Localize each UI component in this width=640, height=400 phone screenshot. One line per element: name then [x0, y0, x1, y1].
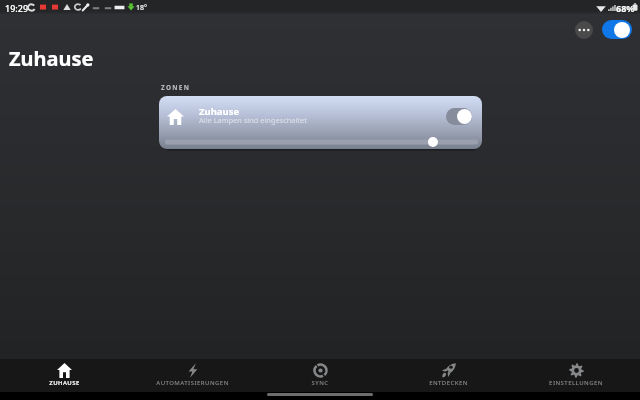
- button[interactable]: Zuhause: [159, 96, 482, 149]
- staticText: 18°: [136, 3, 147, 13]
- button[interactable]: ZUHAUSE: [0, 359, 128, 392]
- staticText: Alle Lampen sind eingeschaltet: [199, 115, 307, 125]
- staticText: AUTOMATISIERUNGEN: [156, 379, 229, 387]
- staticText: 68%: [616, 2, 635, 14]
- staticText: 19:29: [5, 2, 29, 14]
- staticText: SYNC: [311, 379, 329, 387]
- button[interactable]: ENTDECKEN: [384, 359, 512, 392]
- button[interactable]: Toggle home: [602, 20, 632, 39]
- button[interactable]: AUTOMATISIERUNGEN: [128, 359, 256, 392]
- button[interactable]: More options: [575, 21, 593, 39]
- staticText: ENTDECKEN: [429, 379, 468, 387]
- staticText: Zuhause: [199, 105, 240, 118]
- staticText: ZONEN: [161, 83, 191, 92]
- staticText: EINSTELLUNGEN: [549, 379, 603, 387]
- staticText: ZUHAUSE: [49, 379, 80, 387]
- staticText: Zuhause: [9, 45, 94, 66]
- button[interactable]: SYNC: [256, 359, 384, 392]
- button[interactable]: Zone toggle: [446, 108, 472, 125]
- button[interactable]: EINSTELLUNGEN: [512, 359, 640, 392]
